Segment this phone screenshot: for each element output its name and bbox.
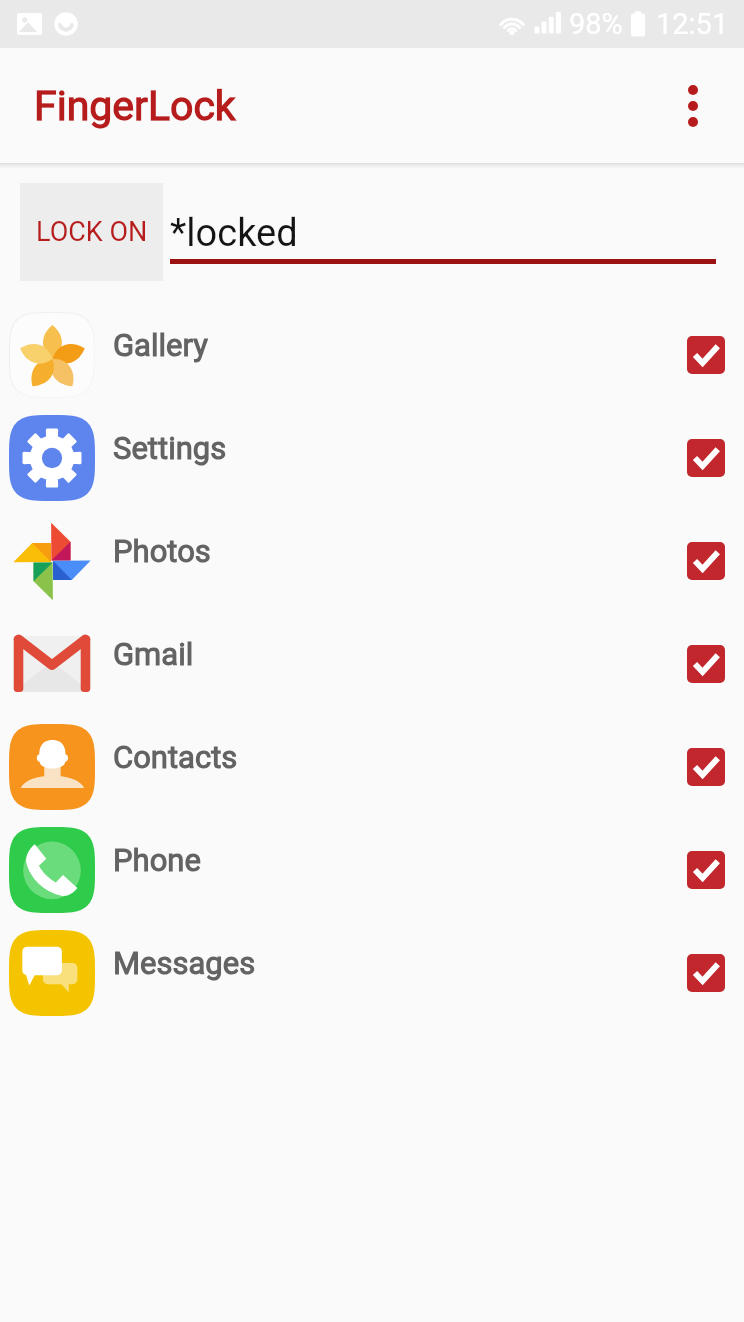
- button[interactable]: Contacts: [0, 724, 744, 827]
- staticText: Settings: [113, 430, 227, 466]
- staticText: 12:51: [656, 7, 729, 41]
- button[interactable]: Settings lock toggle: [678, 430, 734, 486]
- button[interactable]: Photos lock toggle: [678, 533, 734, 589]
- staticText: Gallery: [113, 327, 208, 363]
- button[interactable]: Phone: [0, 827, 744, 930]
- staticText: Messages: [113, 945, 256, 981]
- staticText: Contacts: [113, 739, 238, 775]
- button[interactable]: Settings: [0, 415, 744, 518]
- button[interactable]: Messages: [0, 930, 744, 1033]
- staticText: Phone: [113, 842, 201, 878]
- button[interactable]: Messages lock toggle: [678, 945, 734, 1001]
- button[interactable]: More options: [664, 77, 722, 135]
- button[interactable]: Phone lock toggle: [678, 842, 734, 898]
- button[interactable]: LOCK ON: [20, 183, 163, 281]
- button[interactable]: Gmail: [0, 621, 744, 724]
- staticText: *locked: [170, 211, 298, 256]
- button[interactable]: Gallery: [0, 312, 744, 415]
- button[interactable]: *locked: [170, 183, 716, 281]
- staticText: 98%: [569, 7, 623, 41]
- staticText: LOCK ON: [36, 216, 148, 248]
- button[interactable]: Gmail lock toggle: [678, 636, 734, 692]
- button[interactable]: Contacts lock toggle: [678, 739, 734, 795]
- staticText: Gmail: [113, 636, 194, 672]
- staticText: FingerLock: [34, 82, 236, 130]
- button[interactable]: Photos: [0, 518, 744, 621]
- staticText: Photos: [113, 533, 211, 569]
- button[interactable]: Gallery lock toggle: [678, 327, 734, 383]
